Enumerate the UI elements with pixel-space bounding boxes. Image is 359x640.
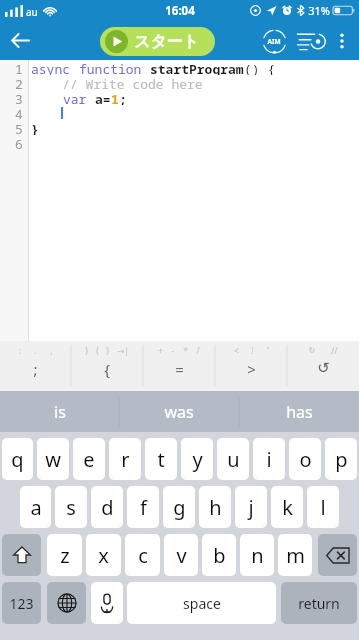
button[interactable]: u bbox=[217, 438, 249, 480]
staticText: } bbox=[31, 120, 39, 135]
staticText: // bbox=[331, 345, 338, 357]
staticText: = bbox=[175, 359, 184, 379]
staticText: 123 bbox=[9, 594, 34, 613]
staticText: ) bbox=[106, 345, 109, 357]
button[interactable]: x bbox=[86, 534, 121, 576]
staticText: w bbox=[45, 446, 61, 473]
button[interactable]: Settings bbox=[291, 24, 325, 58]
button[interactable]: g bbox=[163, 486, 195, 528]
button[interactable]: h bbox=[199, 486, 231, 528]
staticText: y bbox=[192, 446, 203, 473]
staticText: space bbox=[183, 594, 221, 613]
staticText: ! bbox=[251, 345, 254, 357]
staticText: b bbox=[213, 542, 226, 569]
button[interactable]: Voice input bbox=[91, 582, 123, 624]
button[interactable]: Numbers bbox=[2, 582, 41, 624]
staticText: / bbox=[196, 345, 200, 357]
staticText: l bbox=[320, 494, 326, 521]
staticText: > bbox=[247, 359, 256, 379]
staticText: f bbox=[140, 494, 147, 521]
button[interactable]: z bbox=[47, 534, 82, 576]
button[interactable]: : bbox=[0, 341, 71, 391]
button[interactable]: l bbox=[307, 486, 339, 528]
staticText: 31% bbox=[308, 3, 330, 18]
staticText: function bbox=[79, 60, 142, 75]
staticText: 1 bbox=[111, 90, 119, 105]
button[interactable]: y bbox=[181, 438, 213, 480]
staticText: a bbox=[30, 494, 42, 521]
staticText: a= bbox=[95, 90, 111, 105]
staticText: q bbox=[11, 446, 24, 473]
button[interactable]: ) bbox=[71, 341, 143, 391]
staticText: was bbox=[164, 401, 194, 423]
button[interactable]: + bbox=[143, 341, 215, 391]
button[interactable]: Backspace bbox=[318, 534, 357, 576]
staticText: < bbox=[234, 345, 239, 357]
staticText: * bbox=[183, 345, 188, 357]
staticText: t bbox=[157, 446, 165, 473]
button[interactable]: b bbox=[202, 534, 236, 576]
button[interactable]: m bbox=[278, 534, 312, 576]
staticText: o bbox=[299, 446, 312, 473]
staticText: 6 bbox=[15, 135, 23, 150]
staticText: : bbox=[19, 345, 22, 357]
button[interactable]: r bbox=[109, 438, 141, 480]
button[interactable]: Change keyboard bbox=[47, 582, 86, 624]
staticText: p bbox=[335, 446, 348, 473]
staticText: r bbox=[121, 446, 130, 473]
button[interactable]: More options bbox=[325, 24, 359, 58]
button[interactable]: Aim bbox=[257, 24, 291, 58]
staticText: - bbox=[171, 345, 174, 357]
staticText: var bbox=[63, 90, 87, 105]
button[interactable]: was bbox=[119, 391, 239, 432]
button[interactable]: c bbox=[125, 534, 160, 576]
button[interactable]: w bbox=[37, 438, 69, 480]
button[interactable]: space bbox=[127, 582, 276, 624]
button[interactable]: t bbox=[145, 438, 177, 480]
staticText: d bbox=[101, 494, 114, 521]
staticText: スタート bbox=[134, 32, 200, 52]
button[interactable]: f bbox=[127, 486, 159, 528]
button[interactable]: ↻ bbox=[287, 341, 359, 391]
staticText: h bbox=[209, 494, 222, 521]
staticText: k bbox=[282, 494, 293, 521]
staticText: 16:04 bbox=[165, 3, 195, 19]
staticText: i bbox=[266, 446, 272, 473]
button[interactable]: v bbox=[164, 534, 198, 576]
button[interactable]: Shift bbox=[2, 534, 41, 576]
button[interactable]: q bbox=[2, 438, 33, 480]
staticText: u bbox=[227, 446, 240, 473]
staticText: 2 bbox=[15, 75, 23, 90]
staticText: ' bbox=[267, 345, 269, 357]
button[interactable]: スタート bbox=[100, 27, 215, 56]
staticText: is bbox=[54, 401, 66, 423]
button[interactable]: s bbox=[55, 486, 87, 528]
staticText: . bbox=[34, 345, 37, 357]
staticText: s bbox=[66, 494, 76, 521]
button[interactable]: is bbox=[0, 391, 119, 432]
button[interactable]: n bbox=[240, 534, 274, 576]
button[interactable]: o bbox=[289, 438, 321, 480]
staticText: async bbox=[31, 60, 71, 75]
button[interactable]: Return bbox=[281, 582, 357, 624]
button[interactable]: has bbox=[239, 391, 359, 432]
button[interactable]: p bbox=[325, 438, 357, 480]
staticText: x bbox=[98, 542, 109, 569]
button[interactable]: d bbox=[91, 486, 123, 528]
staticText: ) bbox=[85, 345, 88, 357]
staticText: // Write code here bbox=[31, 75, 203, 90]
button[interactable]: e bbox=[73, 438, 105, 480]
button[interactable]: i bbox=[253, 438, 285, 480]
button[interactable]: j bbox=[235, 486, 267, 528]
button[interactable]: k bbox=[271, 486, 303, 528]
staticText: startProgram bbox=[150, 60, 244, 75]
button[interactable]: < bbox=[215, 341, 287, 391]
button[interactable]: a bbox=[20, 486, 51, 528]
staticText: 5 bbox=[15, 120, 23, 135]
staticText: z bbox=[60, 542, 70, 569]
staticText: g bbox=[173, 494, 186, 521]
button[interactable]: Back bbox=[0, 21, 40, 60]
